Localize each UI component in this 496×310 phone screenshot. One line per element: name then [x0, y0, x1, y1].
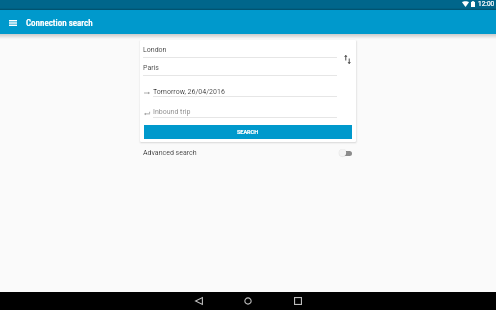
staticText: Inbound trip	[153, 108, 191, 116]
button[interactable]: Open navigation menu	[0, 10, 26, 34]
button[interactable]: SEARCH	[144, 125, 352, 139]
staticText: London	[143, 46, 167, 54]
staticText: SEARCH	[237, 129, 259, 135]
button[interactable]: Back	[193, 295, 205, 307]
button[interactable]: Inbound trip	[140, 97, 356, 118]
button[interactable]: Recent apps	[292, 295, 304, 307]
staticText: Paris	[143, 64, 159, 72]
button[interactable]: Advanced search	[140, 142, 356, 164]
button[interactable]: Swap origin and destination	[337, 40, 356, 76]
button[interactable]: Tomorrow, 26/04/2016	[140, 76, 356, 97]
staticText: Tomorrow, 26/04/2016	[153, 88, 225, 96]
staticText: Connection search	[26, 18, 93, 29]
button[interactable]: London	[140, 40, 356, 58]
button[interactable]: Home	[242, 295, 254, 307]
button[interactable]: Paris	[140, 58, 356, 76]
staticText: 12:00	[478, 0, 495, 8]
staticText: Advanced search	[143, 149, 197, 157]
